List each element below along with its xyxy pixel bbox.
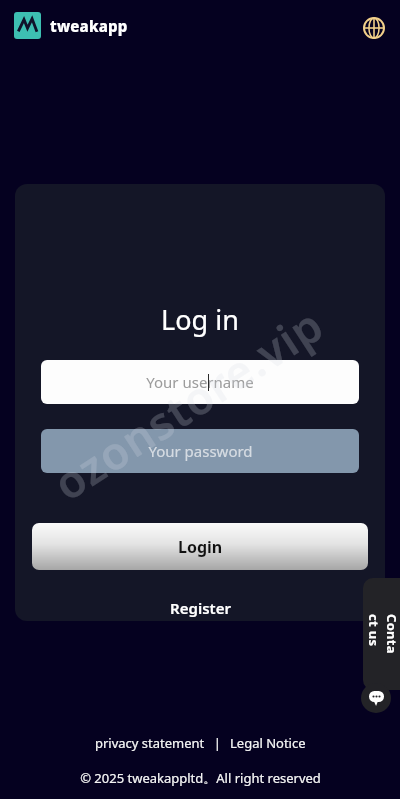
staticText: Your username <box>146 372 254 392</box>
staticText: privacy statement <box>95 734 205 752</box>
button[interactable]: Contact us <box>363 578 400 690</box>
button[interactable]: Register <box>140 595 260 620</box>
staticText: Legal Notice <box>230 734 306 752</box>
button[interactable]: Login <box>32 523 368 570</box>
button[interactable]: Language <box>360 14 387 41</box>
staticText: Your password <box>148 441 253 461</box>
staticText: | <box>207 734 228 752</box>
staticText: Log in <box>161 301 239 338</box>
button[interactable]: Your username <box>41 360 359 404</box>
button[interactable]: Your password <box>41 429 359 473</box>
button[interactable]: tweakapp <box>14 12 128 39</box>
staticText: ozonstore.vip <box>41 293 335 513</box>
staticText: Login <box>178 536 223 558</box>
staticText: tweakapp <box>50 16 128 36</box>
staticText: © 2025 tweakappltd。All right reserved <box>80 769 321 787</box>
button[interactable]: Legal Notice <box>228 731 308 755</box>
staticText: Contact us <box>365 614 400 654</box>
button[interactable]: privacy statement <box>93 731 207 755</box>
button[interactable]: Chat <box>361 683 391 713</box>
staticText: Register <box>170 598 231 618</box>
